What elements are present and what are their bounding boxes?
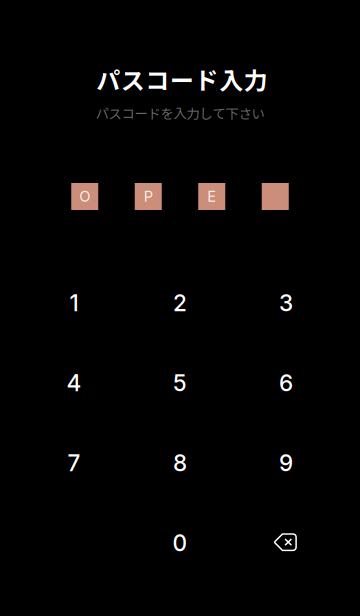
staticText: 0 bbox=[172, 529, 187, 557]
staticText: パスコード入力 bbox=[96, 62, 268, 96]
staticText: 3 bbox=[279, 289, 293, 317]
button[interactable]: 4 bbox=[21, 343, 127, 423]
staticText: E bbox=[207, 188, 216, 205]
staticText: O bbox=[79, 188, 90, 205]
button[interactable]: 8 bbox=[127, 423, 233, 503]
button[interactable]: 5 bbox=[127, 343, 233, 423]
staticText: 4 bbox=[66, 369, 81, 397]
button[interactable]: 1 bbox=[21, 263, 127, 343]
staticText: 8 bbox=[173, 449, 187, 477]
staticText: 5 bbox=[173, 369, 187, 397]
staticText: 1 bbox=[69, 289, 78, 317]
staticText: 9 bbox=[279, 449, 293, 477]
staticText: 6 bbox=[279, 369, 293, 397]
button[interactable]: Delete bbox=[233, 503, 339, 583]
button[interactable]: 0 bbox=[127, 503, 233, 583]
button[interactable]: 9 bbox=[233, 423, 339, 503]
staticText: P bbox=[144, 188, 153, 205]
staticText: 2 bbox=[173, 289, 187, 317]
staticText: 7 bbox=[67, 449, 80, 477]
button[interactable]: 3 bbox=[233, 263, 339, 343]
button[interactable]: 6 bbox=[233, 343, 339, 423]
staticText: パスコードを入力して下さい bbox=[95, 103, 264, 123]
button[interactable]: 2 bbox=[127, 263, 233, 343]
button[interactable]: 7 bbox=[21, 423, 127, 503]
